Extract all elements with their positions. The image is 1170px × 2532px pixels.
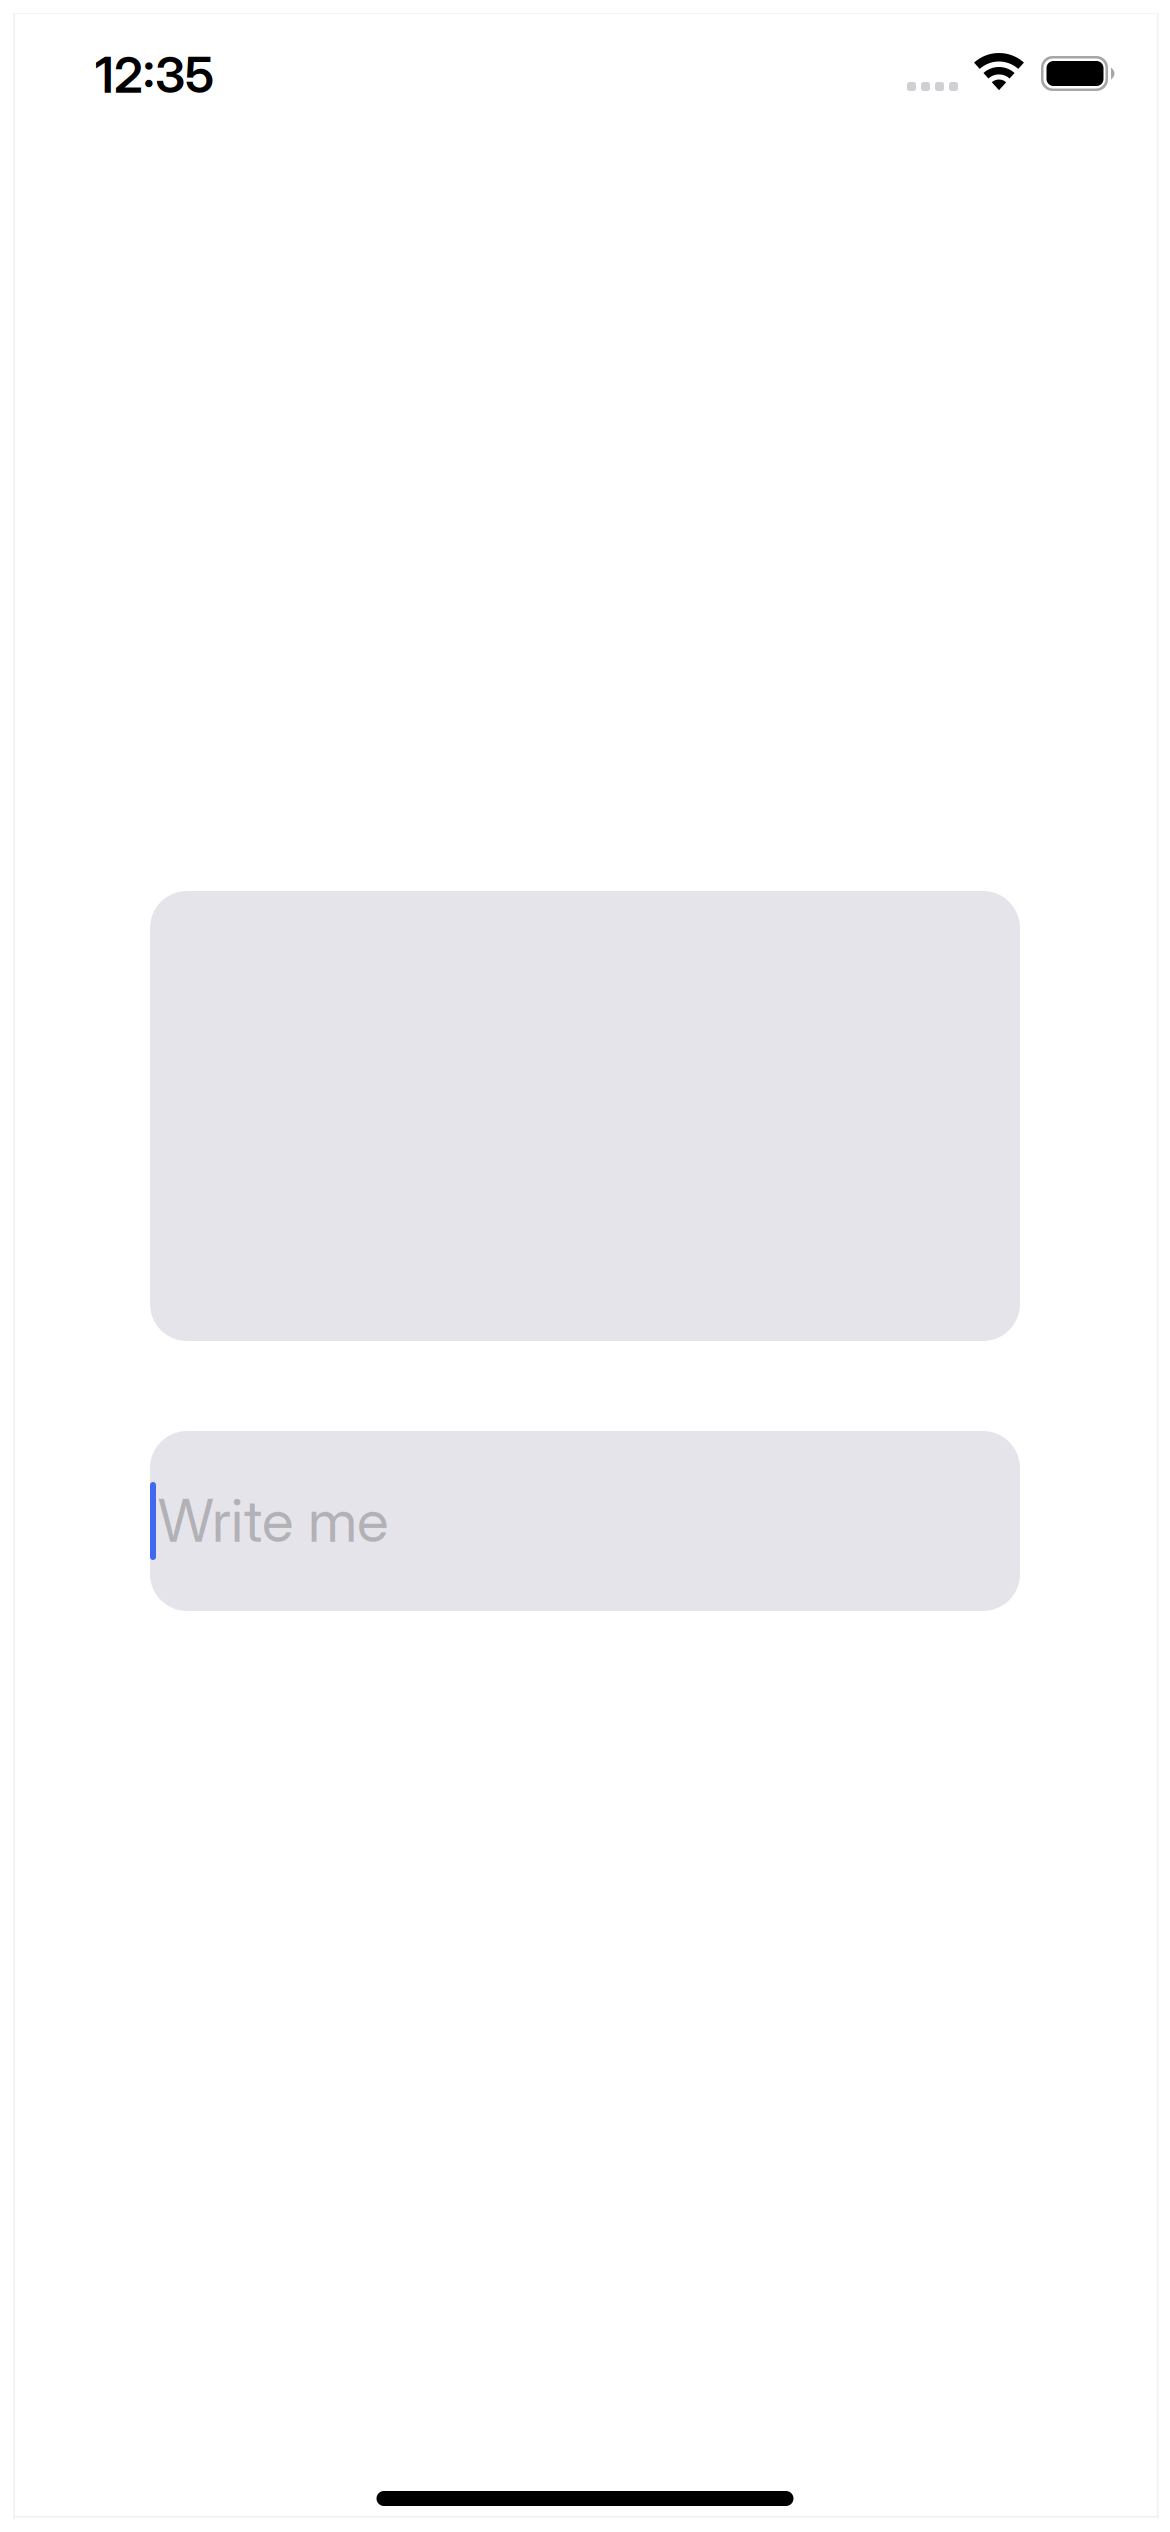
button[interactable]: Write me — [150, 1431, 1020, 1611]
staticText: Write me — [158, 1485, 388, 1556]
staticText: 12:35 — [95, 45, 214, 105]
